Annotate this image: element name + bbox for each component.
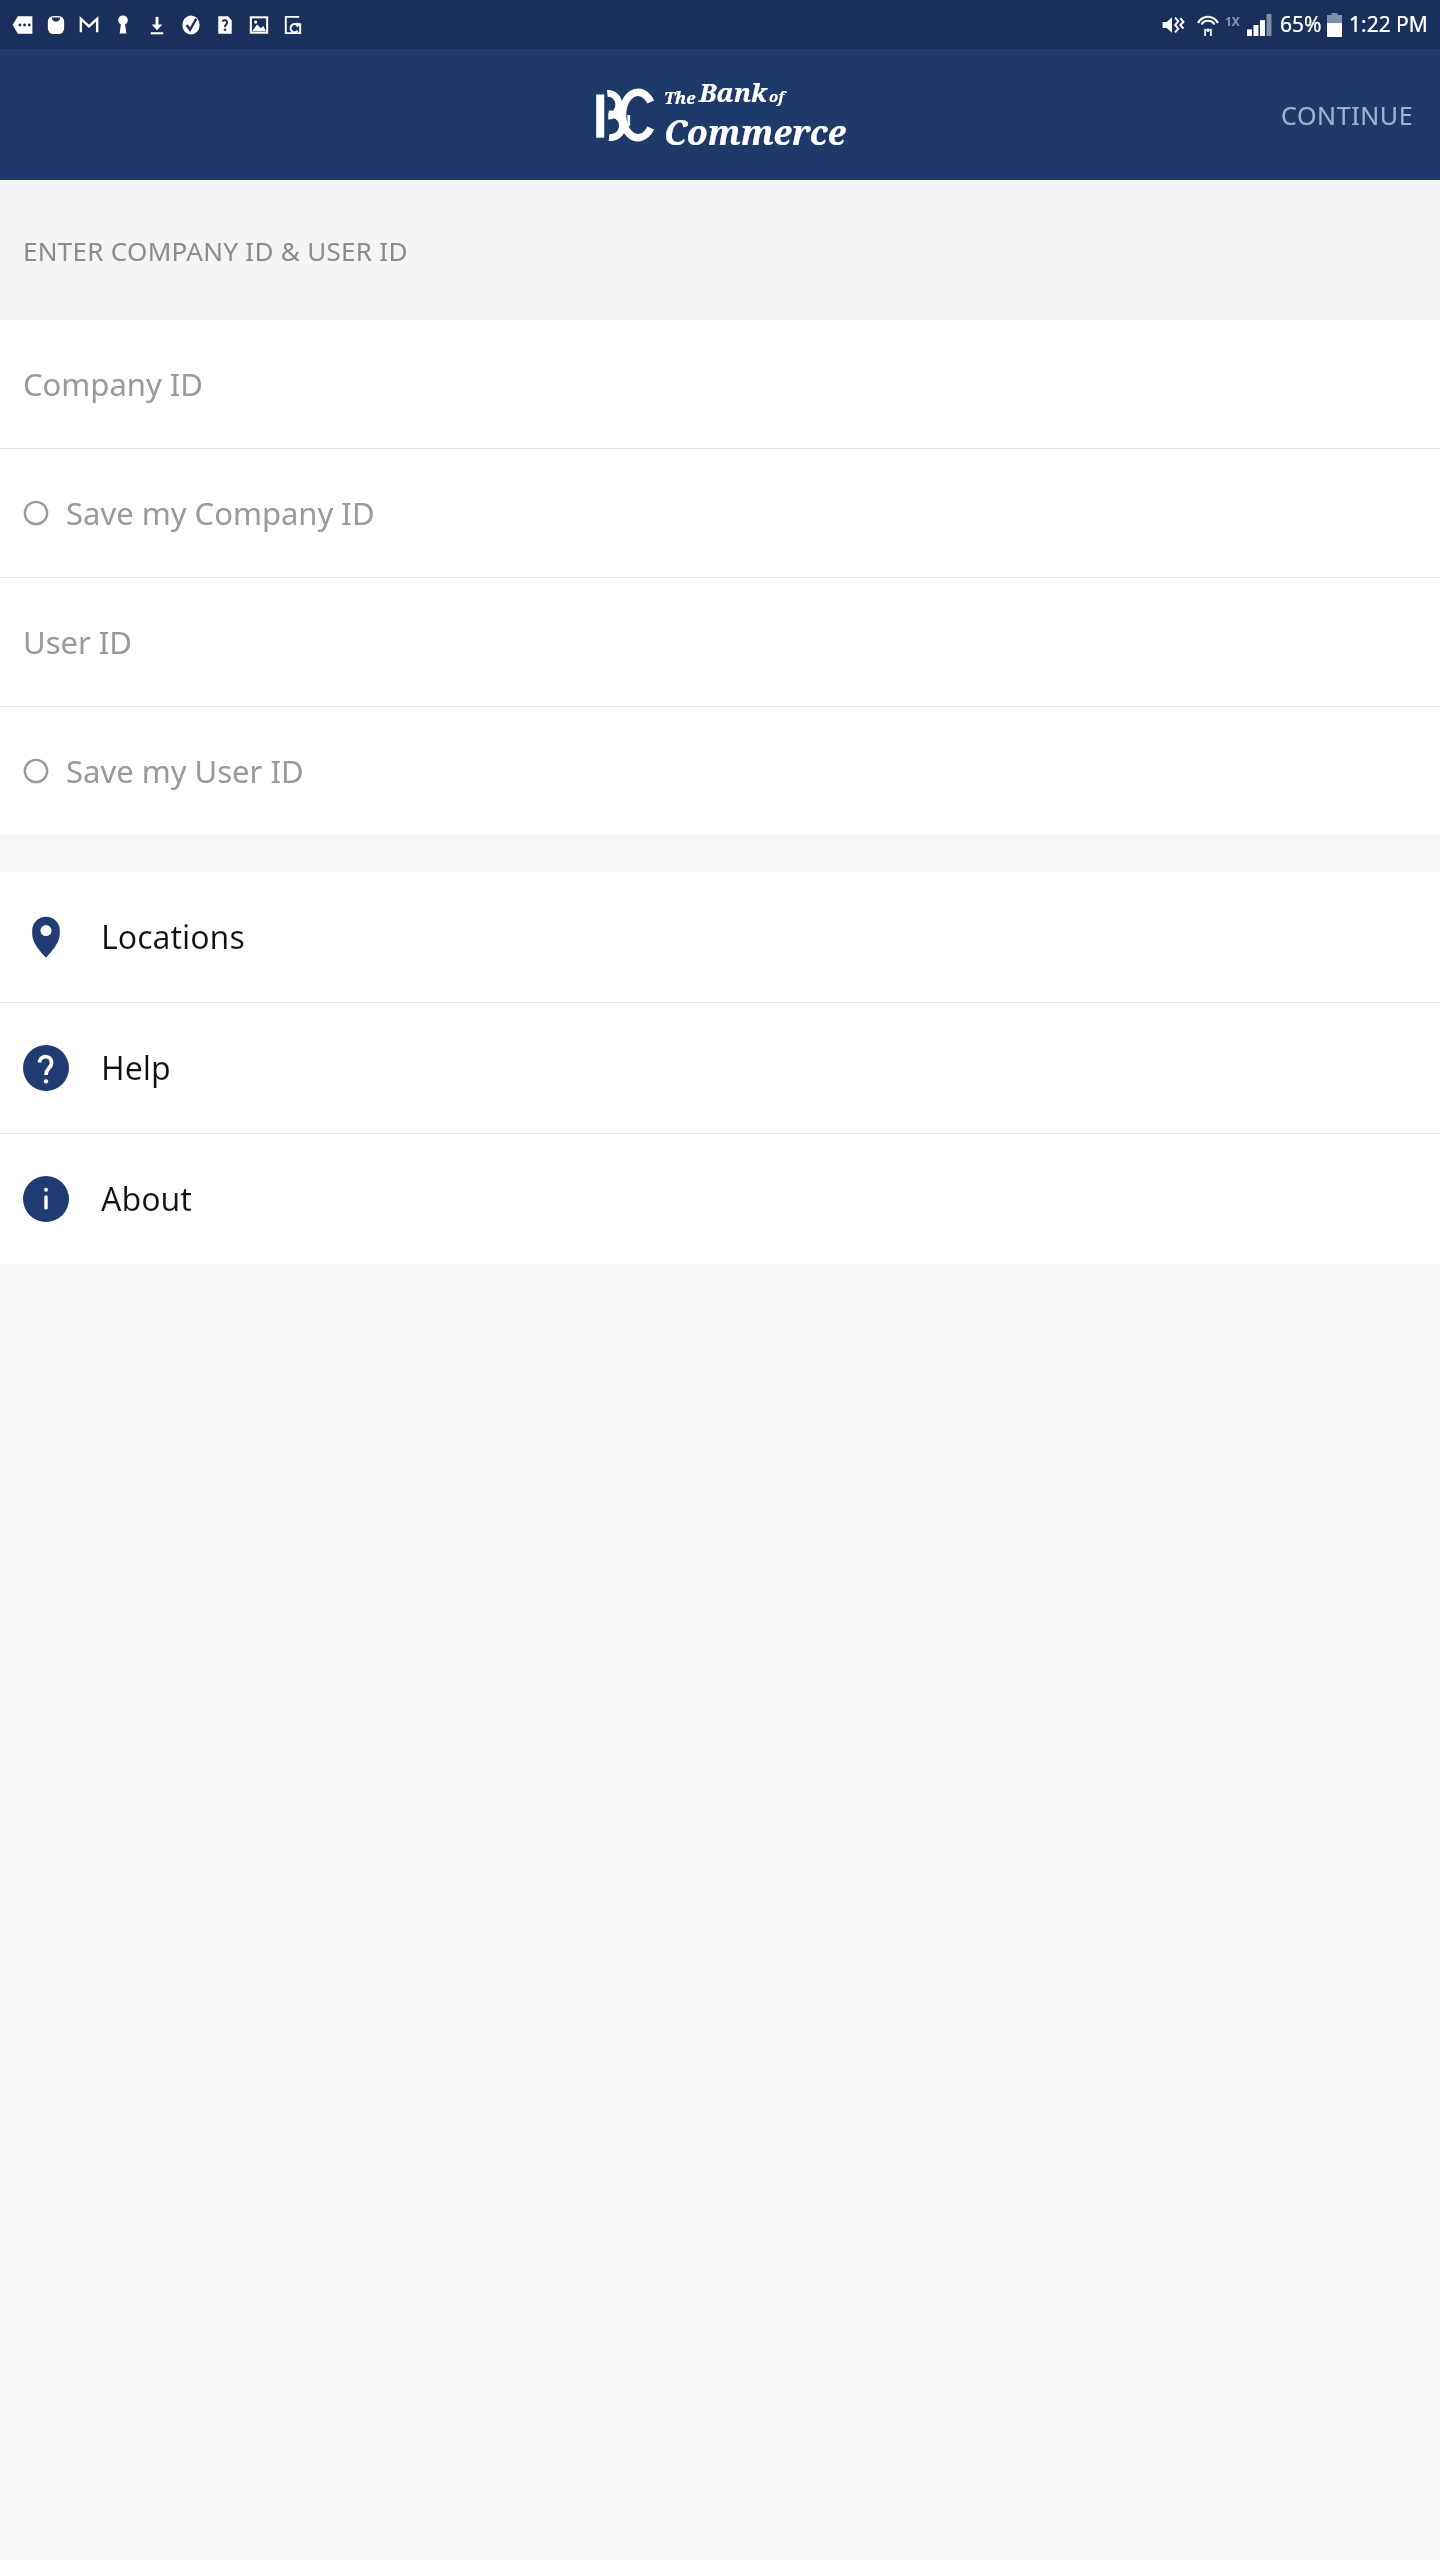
other: About (23, 1176, 69, 1222)
staticText: About (101, 1177, 192, 1221)
staticText: Save my Company ID (66, 492, 375, 534)
button[interactable]: Locations (0, 872, 1440, 1002)
staticText: 1:22 PM (1349, 10, 1428, 39)
staticText: ENTER COMPANY ID & USER ID (23, 233, 408, 268)
other: Help (23, 1045, 69, 1091)
button[interactable]: Company ID (0, 320, 1440, 448)
staticText: Company ID (23, 363, 203, 405)
staticText: of (769, 86, 785, 106)
button[interactable]: Save my User ID (0, 707, 1440, 835)
staticText: 1X (1225, 13, 1240, 29)
button[interactable]: Save my Company ID (0, 449, 1440, 577)
staticText: The (664, 86, 696, 109)
button[interactable]: About (0, 1134, 1440, 1264)
staticText: 65% (1280, 10, 1322, 39)
button[interactable]: User ID (0, 578, 1440, 706)
other: Locations (23, 914, 69, 960)
staticText: Help (101, 1046, 171, 1090)
staticText: Locations (101, 915, 245, 959)
staticText: User ID (23, 621, 132, 663)
staticText: CONTINUE (1281, 98, 1414, 132)
staticText: Commerce (664, 109, 847, 155)
button[interactable]: Help (0, 1003, 1440, 1133)
button[interactable]: CONTINUE (1255, 76, 1440, 154)
staticText: Bank (699, 74, 767, 109)
staticText: Save my User ID (66, 750, 304, 792)
